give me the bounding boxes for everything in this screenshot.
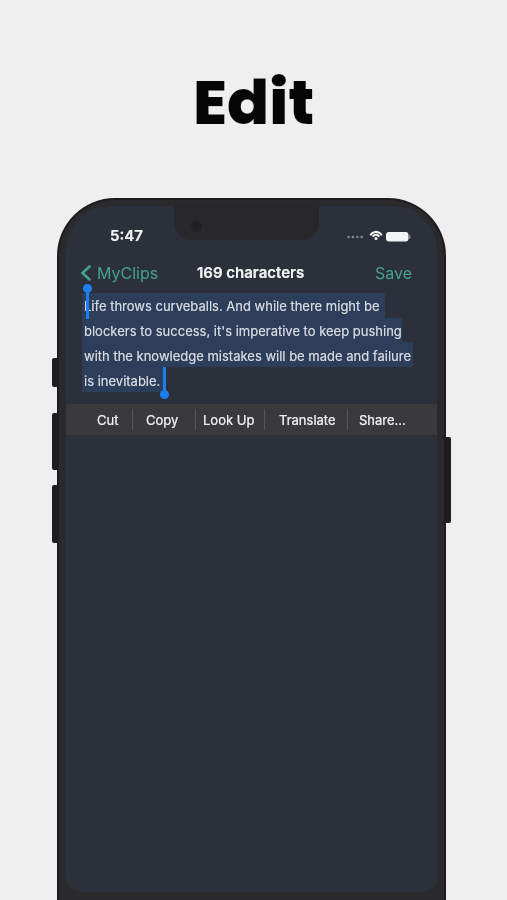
staticText: Life throws curveballs. And while there … bbox=[84, 298, 380, 314]
staticText: 169 characters bbox=[197, 263, 305, 281]
button[interactable]: Copy bbox=[129, 404, 195, 435]
staticText: Cut bbox=[97, 412, 119, 428]
staticText: MyClips bbox=[97, 263, 159, 282]
staticText: Translate bbox=[279, 412, 336, 428]
staticText: Edit bbox=[193, 59, 315, 139]
staticText: Share... bbox=[359, 412, 406, 428]
button[interactable]: Save bbox=[364, 260, 424, 284]
staticText: 5:47 bbox=[110, 226, 143, 244]
button[interactable]: Look Up bbox=[196, 404, 262, 435]
staticText: Save bbox=[375, 263, 413, 282]
button[interactable]: Cut bbox=[75, 404, 141, 435]
staticText: blockers to success, it's imperative to … bbox=[84, 323, 402, 339]
button[interactable]: Share... bbox=[349, 404, 415, 435]
button[interactable]: MyClips bbox=[78, 262, 208, 284]
staticText: Copy bbox=[146, 412, 179, 428]
button[interactable]: Translate bbox=[274, 404, 340, 435]
staticText: with the knowledge mistakes will be made… bbox=[84, 348, 411, 364]
staticText: is inevitable. bbox=[84, 373, 161, 389]
staticText: Look Up bbox=[203, 412, 255, 428]
